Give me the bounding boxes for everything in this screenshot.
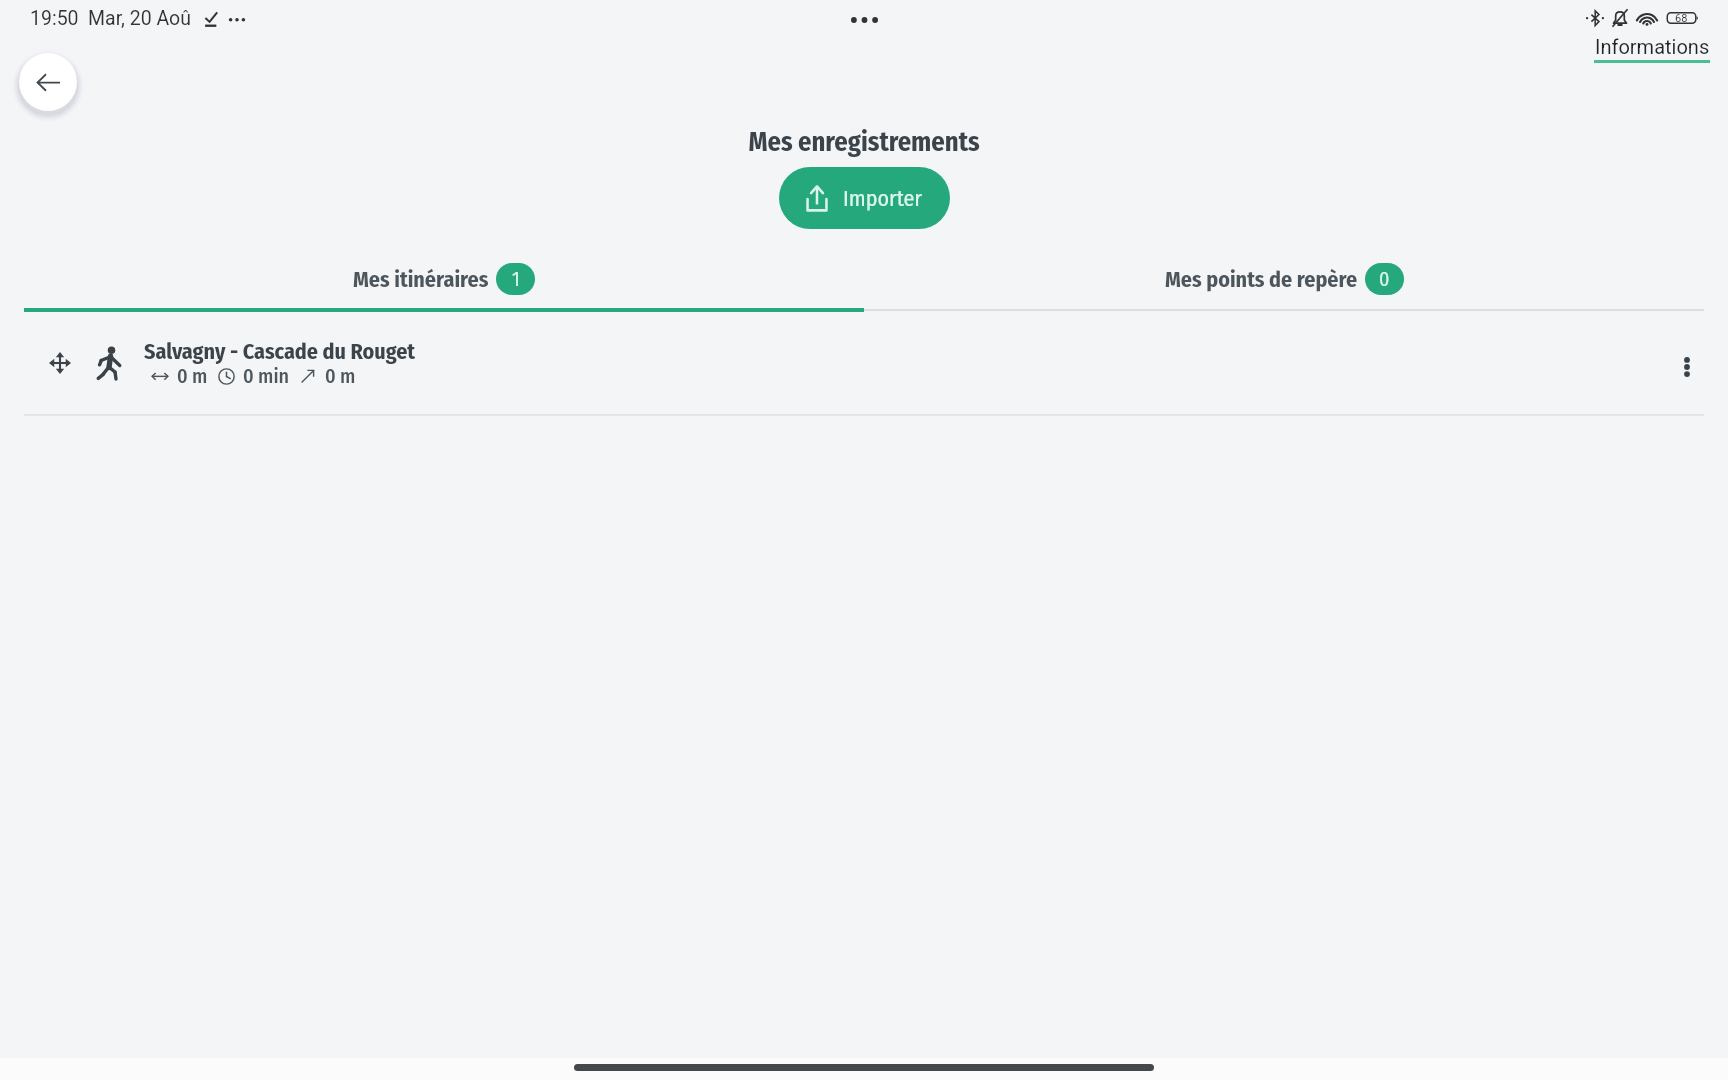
staticText: Mes enregistrements [0, 126, 1728, 158]
staticText: 1 [512, 267, 520, 291]
staticText: Mes points de repère [1165, 266, 1358, 292]
button[interactable]: Salvagny - Cascade du Rouget [0, 320, 1728, 414]
button[interactable]: Importer [779, 167, 950, 229]
staticText: Mes itinéraires [353, 266, 489, 292]
button[interactable]: Back [19, 53, 77, 111]
staticText: 0 [1379, 267, 1390, 291]
staticText: 19:50 [30, 7, 79, 30]
staticText: 0 m [325, 364, 356, 388]
staticText: 0 m [177, 364, 208, 388]
button[interactable]: Mes itinéraires [24, 251, 864, 306]
staticText: 68 [1675, 12, 1688, 25]
staticText: 0 min [243, 364, 290, 388]
staticText: Mar, 20 Aoû [88, 7, 191, 30]
button[interactable]: Mes points de repère [864, 251, 1704, 306]
staticText: Salvagny - Cascade du Rouget [144, 338, 416, 364]
staticText: Informations [1595, 35, 1710, 58]
button[interactable]: Informations [1594, 35, 1710, 63]
staticText: Importer [843, 185, 923, 211]
button[interactable]: More options [1663, 343, 1711, 391]
